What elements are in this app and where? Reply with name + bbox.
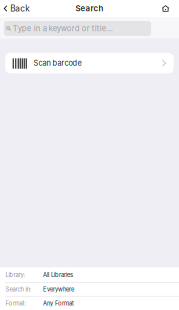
staticText: All Libraries — [43, 271, 73, 278]
button[interactable]: Scan barcode — [5, 53, 174, 73]
button[interactable]: Home — [157, 0, 179, 17]
staticText: Search in: — [5, 286, 31, 293]
button[interactable]: Back — [0, 0, 35, 17]
staticText: Search — [75, 4, 103, 13]
staticText: Everywhere — [43, 286, 74, 293]
staticText: Scan barcode — [34, 59, 82, 68]
staticText: Format: — [5, 300, 26, 307]
staticText: Any Format — [43, 300, 74, 307]
button[interactable]: Type in a keyword or title... — [4, 21, 151, 36]
staticText: Back — [10, 3, 30, 13]
staticText: Library: — [5, 271, 25, 278]
staticText: Type in a keyword or title... — [13, 24, 113, 33]
